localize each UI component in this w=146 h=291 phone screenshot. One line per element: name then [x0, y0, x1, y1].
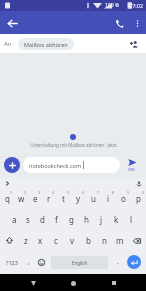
button[interactable]: Mailbox abhören	[18, 38, 74, 50]
staticText: g	[69, 214, 74, 225]
button[interactable]: p	[131, 188, 146, 209]
staticText: v	[70, 235, 75, 246]
button[interactable]: k	[109, 209, 124, 230]
staticText: f	[55, 214, 58, 225]
staticText: z	[24, 235, 28, 246]
button[interactable]: Voice input	[134, 179, 143, 188]
staticText: l	[130, 214, 133, 225]
staticText: Unterhaltung mit Mailbox abhören · Jetzt	[30, 142, 117, 148]
button[interactable]: b	[80, 230, 96, 251]
button[interactable]: Call	[110, 14, 128, 32]
staticText: x	[38, 235, 43, 246]
button[interactable]: j	[94, 209, 109, 230]
button[interactable]: Add attachment	[4, 157, 20, 173]
button[interactable]: r	[42, 188, 56, 209]
staticText: ,	[28, 257, 30, 267]
staticText: h	[84, 214, 89, 225]
button[interactable]: Backspace	[128, 230, 146, 251]
staticText: s	[26, 214, 30, 225]
staticText: SMS	[128, 167, 136, 172]
button[interactable]: ,	[22, 251, 35, 273]
staticText: k	[114, 214, 119, 225]
staticText: notebookcheck.com	[29, 162, 82, 169]
button[interactable]: x	[33, 230, 48, 251]
button[interactable]: Home	[65, 275, 81, 291]
button[interactable]: Enter	[124, 251, 144, 273]
button[interactable]: Shift	[0, 230, 18, 251]
button[interactable]: Send SMS	[122, 155, 142, 175]
staticText: j	[100, 214, 103, 225]
staticText: p	[136, 193, 141, 204]
button[interactable]: w	[14, 188, 28, 209]
staticText: t	[62, 193, 65, 204]
staticText: n	[102, 235, 107, 246]
staticText: a	[12, 214, 17, 225]
staticText: 4	[52, 190, 55, 195]
staticText: e	[33, 193, 38, 204]
staticText: .	[117, 257, 119, 267]
staticText: m	[116, 235, 124, 246]
button[interactable]: Expand suggestions	[3, 179, 12, 188]
button[interactable]: c	[48, 230, 64, 251]
staticText: 5	[67, 190, 70, 195]
staticText: 8	[112, 190, 115, 195]
button[interactable]: Emoji	[35, 251, 48, 273]
button[interactable]: z	[18, 230, 33, 251]
button[interactable]: .	[111, 251, 124, 273]
button[interactable]: notebookcheck.com	[23, 157, 120, 173]
button[interactable]: l	[124, 209, 139, 230]
button[interactable]: d	[35, 209, 49, 230]
staticText: 0	[142, 190, 145, 195]
button[interactable]: Back	[3, 14, 21, 32]
button[interactable]: v	[64, 230, 80, 251]
staticText: i	[107, 193, 110, 204]
staticText: y	[76, 193, 81, 204]
staticText: 17:02	[129, 2, 144, 9]
button[interactable]: Recents	[106, 275, 122, 291]
staticText: c	[54, 235, 58, 246]
button[interactable]: u	[86, 188, 101, 209]
staticText: b	[86, 235, 91, 246]
button[interactable]: y	[71, 188, 86, 209]
button[interactable]: t	[56, 188, 71, 209]
button[interactable]: m	[112, 230, 128, 251]
staticText: 1	[10, 190, 13, 195]
button[interactable]: q	[0, 188, 14, 209]
staticText: ?123	[6, 259, 18, 266]
staticText: o	[121, 193, 126, 204]
button[interactable]: Back	[25, 275, 41, 291]
button[interactable]: a	[7, 209, 21, 230]
staticText: u	[91, 193, 96, 204]
button[interactable]: n	[96, 230, 112, 251]
staticText: English	[72, 260, 88, 266]
staticText: r	[47, 193, 51, 204]
button[interactable]: English	[51, 256, 108, 269]
staticText: Mailbox abhören	[24, 41, 68, 48]
staticText: 7	[97, 190, 100, 195]
button[interactable]: ?123	[2, 251, 22, 273]
staticText: q	[5, 193, 10, 204]
button[interactable]: o	[116, 188, 131, 209]
staticText: 100 %	[105, 2, 120, 9]
button[interactable]: i	[101, 188, 116, 209]
button[interactable]: e	[28, 188, 42, 209]
button[interactable]: h	[79, 209, 94, 230]
button[interactable]: More options	[128, 14, 146, 32]
button[interactable]: f	[49, 209, 64, 230]
staticText: d	[40, 214, 45, 225]
button[interactable]: g	[64, 209, 79, 230]
staticText: 6	[82, 190, 85, 195]
button[interactable]: s	[21, 209, 35, 230]
staticText: 9	[127, 190, 130, 195]
staticText: w	[18, 193, 25, 204]
button[interactable]: Add recipient	[126, 36, 142, 52]
staticText: 2	[24, 190, 27, 195]
staticText: An	[4, 40, 12, 48]
staticText: 3	[38, 190, 41, 195]
